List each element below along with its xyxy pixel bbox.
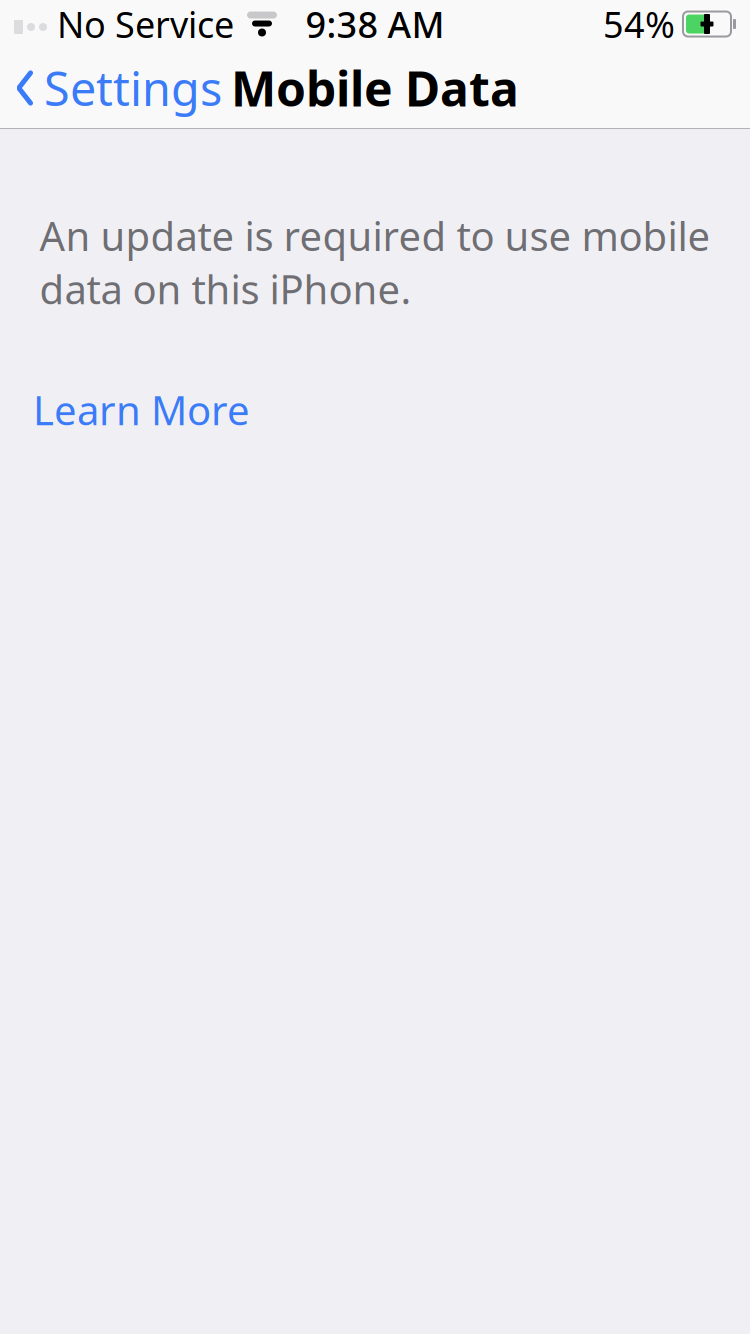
- button[interactable]: Settings: [0, 47, 236, 129]
- staticText: No Service: [57, 0, 234, 48]
- staticText: 54%: [603, 0, 675, 48]
- button[interactable]: Learn More: [33, 377, 250, 442]
- staticText: Settings: [44, 57, 222, 119]
- staticText: 9:38 AM: [305, 0, 444, 48]
- staticText: Learn More: [33, 383, 250, 436]
- staticText: Mobile Data: [231, 56, 519, 120]
- staticText: An update is required to use mobile data…: [39, 209, 710, 315]
